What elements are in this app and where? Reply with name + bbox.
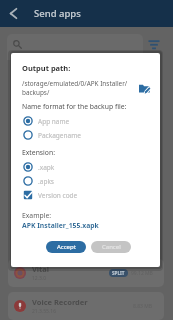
- staticText: App name: [38, 117, 70, 126]
- staticText: .apks: [38, 177, 54, 186]
- staticText: 12.3.0: [32, 275, 47, 282]
- staticText: Vital: [32, 264, 50, 274]
- staticText: .xapk: [38, 163, 55, 172]
- staticText: 99.12 MB: [131, 270, 153, 277]
- staticText: 21.3.55.16: [32, 308, 57, 315]
- staticText: Accept: [57, 243, 76, 251]
- button[interactable]: Voice Recorder: [8, 292, 164, 320]
- button[interactable]: .xapk: [11, 160, 160, 174]
- button[interactable]: Search: [11, 38, 24, 51]
- staticText: /storage/emulated/0/APK Installer/ backu…: [22, 79, 134, 96]
- button[interactable]: Vital: [8, 259, 164, 287]
- button[interactable]: .apks: [11, 174, 160, 188]
- staticText: Output path:: [22, 63, 71, 73]
- button[interactable]: Version code: [11, 188, 160, 202]
- staticText: Send apps: [34, 7, 81, 20]
- staticText: Cancel: [102, 243, 121, 251]
- button[interactable]: App name: [11, 114, 160, 128]
- button[interactable]: Choose output folder: [137, 81, 151, 95]
- staticText: SPLIT: [112, 270, 125, 276]
- button[interactable]: Accept: [46, 241, 86, 253]
- staticText: Extension:: [22, 148, 56, 157]
- staticText: Voice Recorder: [32, 297, 88, 307]
- staticText: Example:: [22, 211, 52, 220]
- staticText: Name format for the backup file:: [22, 102, 127, 111]
- staticText: Version code: [38, 191, 78, 200]
- button[interactable]: Packagename: [11, 128, 160, 142]
- staticText: Packagename: [38, 131, 81, 140]
- button[interactable]: [7, 34, 143, 60]
- button[interactable]: Sort: [146, 37, 162, 53]
- staticText: APK Installer_155.xapk: [22, 221, 99, 230]
- button[interactable]: Cancel: [91, 241, 131, 253]
- button[interactable]: Back: [4, 4, 23, 23]
